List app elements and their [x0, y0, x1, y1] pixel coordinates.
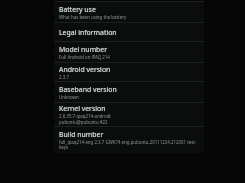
staticText: full_ipaq214-eng 2.3.7 GWK74 eng.pubuntu…: [59, 139, 200, 151]
staticText: Battery use: [59, 5, 96, 14]
staticText: What has been using the battery: [59, 14, 127, 20]
staticText: 2.6.35.7-ipaq214-android: [59, 113, 111, 119]
button[interactable]: Build number: [54, 127, 204, 153]
staticText: Baseband version: [59, 85, 117, 94]
button[interactable]: Battery use: [54, 2, 204, 22]
staticText: pubuntu@pubuntu #22: [59, 119, 108, 125]
staticText: Model number: [59, 45, 108, 54]
button[interactable]: Android version: [54, 63, 204, 81]
button[interactable]: Model number: [54, 42, 204, 62]
staticText: 2.3.7: [59, 74, 69, 80]
button[interactable]: Kernel version: [54, 103, 204, 126]
button[interactable]: Legal information: [54, 23, 204, 41]
staticText: Unknown: [59, 94, 79, 100]
staticText: Build number: [59, 130, 104, 139]
staticText: Android version: [59, 65, 111, 74]
staticText: Kernel version: [59, 104, 106, 113]
staticText: Full Android on iPAQ 214: [59, 54, 110, 60]
button[interactable]: Baseband version: [54, 82, 204, 102]
staticText: Legal information: [59, 28, 117, 37]
